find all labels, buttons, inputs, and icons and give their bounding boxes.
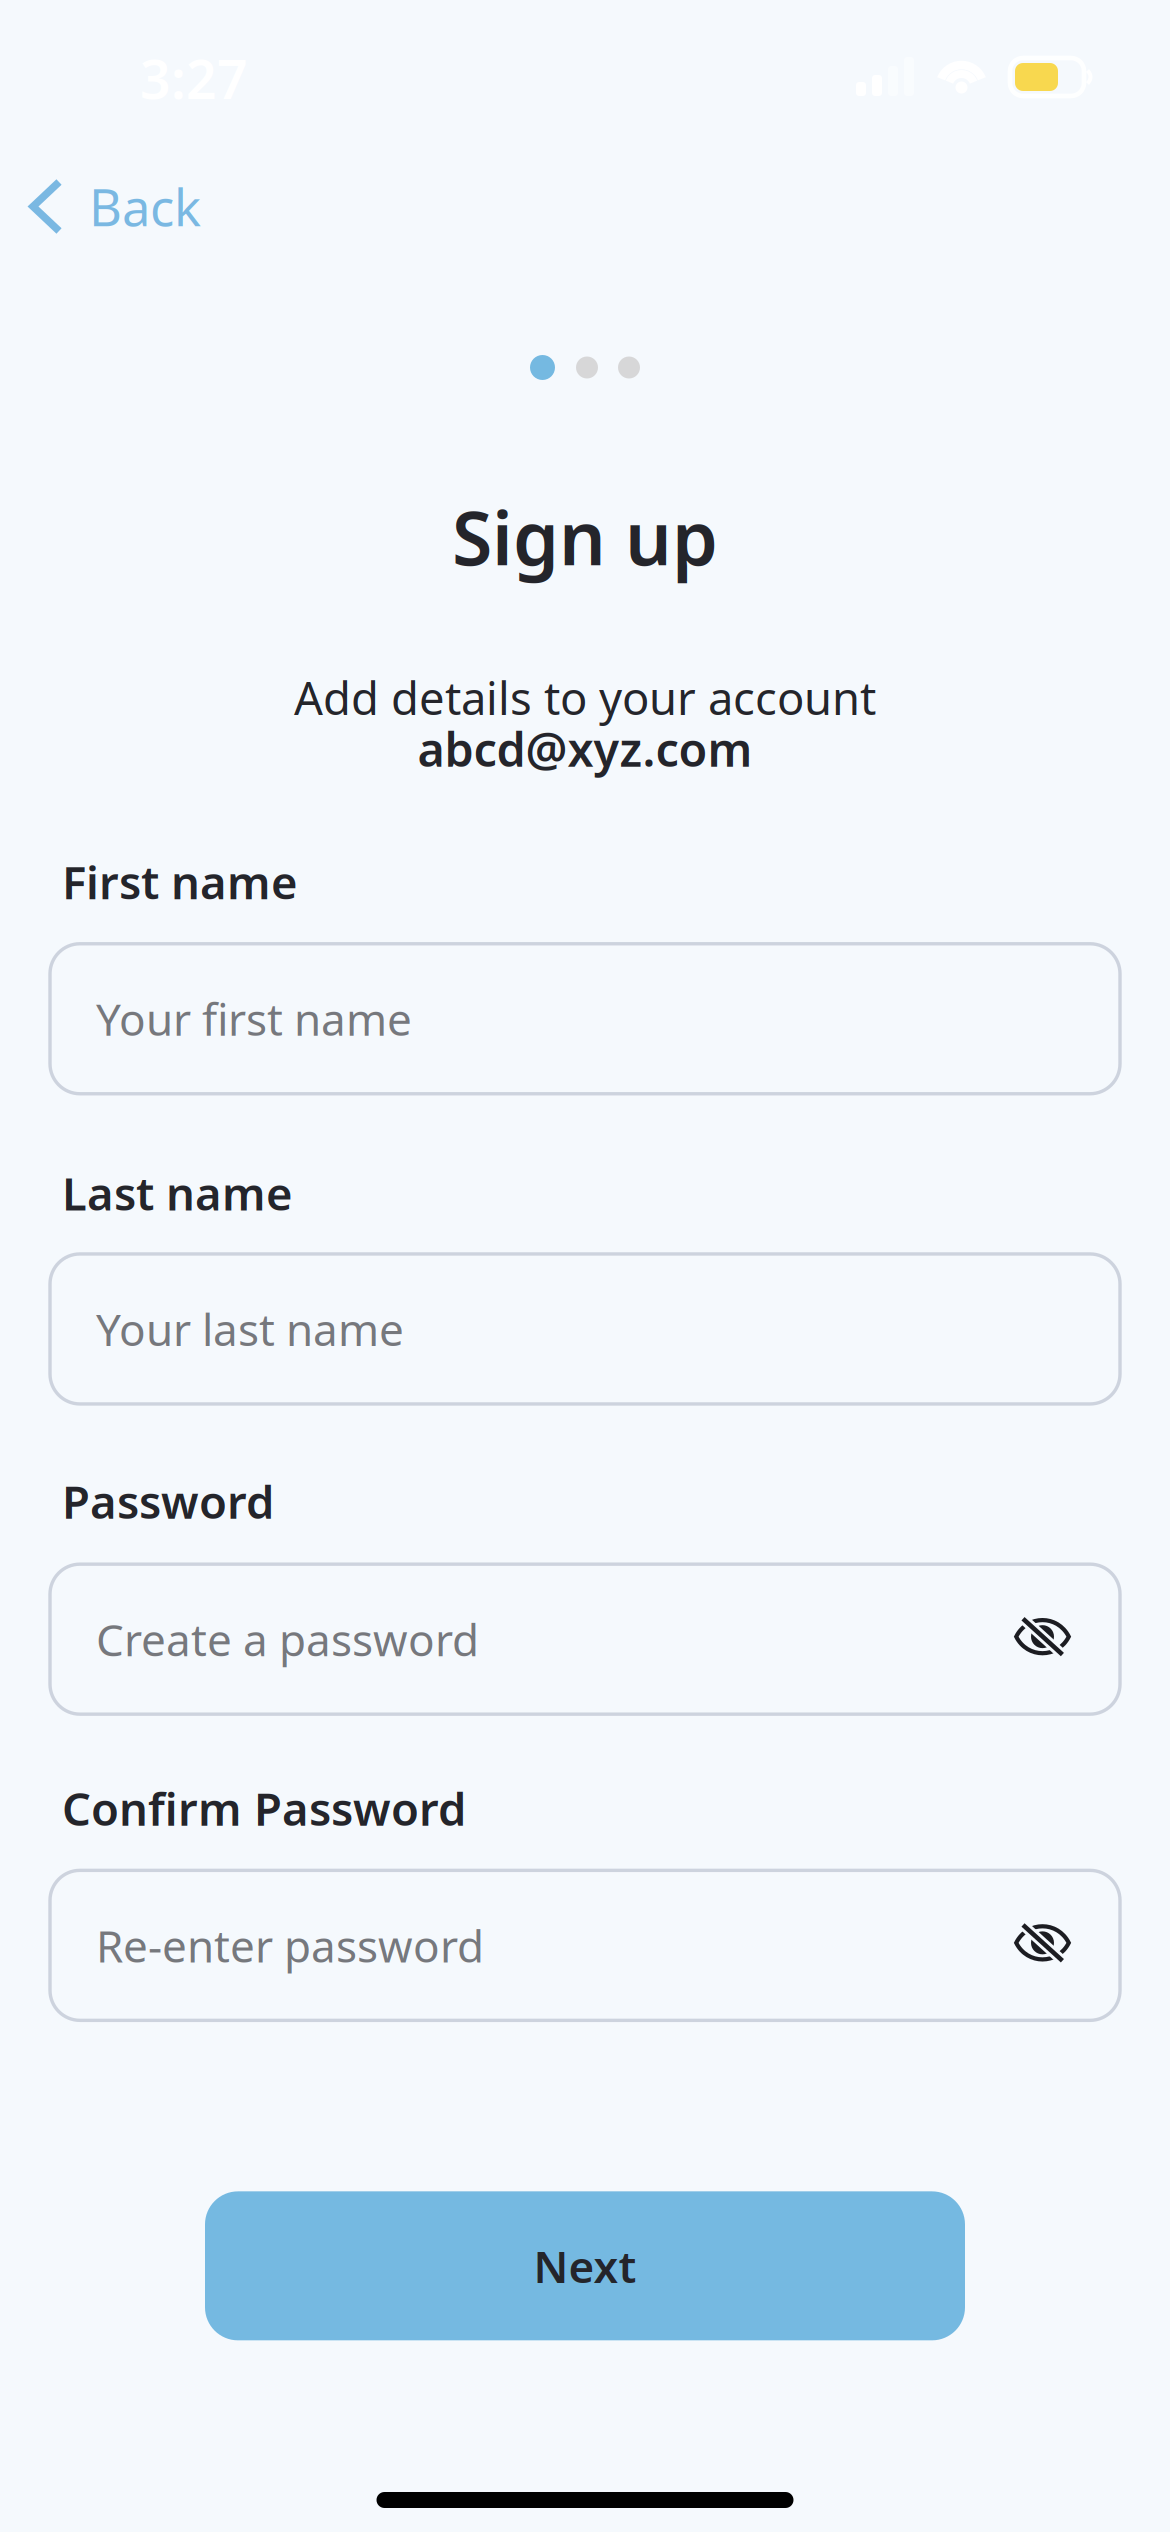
button[interactable]: Show password <box>1014 1923 1071 1967</box>
button[interactable]: Back <box>0 174 241 239</box>
button[interactable]: Page 3 <box>618 356 640 378</box>
staticText: Add details to your account <box>294 667 876 728</box>
button[interactable]: Your first name <box>50 944 1120 1094</box>
button[interactable]: Next <box>205 2191 965 2340</box>
staticText: Back <box>89 173 201 240</box>
staticText: 3:27 <box>140 43 248 114</box>
button[interactable]: Page 1, current page <box>530 355 555 380</box>
staticText: Last name <box>62 1163 293 1223</box>
staticText: abcd@xyz.com <box>417 718 752 780</box>
staticText: Create a password <box>96 1610 479 1668</box>
staticText: First name <box>62 852 298 912</box>
staticText: Confirm Password <box>62 1778 466 1838</box>
staticText: Your first name <box>96 989 412 1048</box>
button[interactable]: Your last name <box>50 1254 1120 1404</box>
staticText: Password <box>62 1471 274 1531</box>
staticText: Your last name <box>96 1300 404 1358</box>
staticText: Sign up <box>452 488 718 585</box>
button[interactable]: Page 2 <box>576 356 598 378</box>
staticText: Re-enter password <box>96 1916 484 1974</box>
staticText: Next <box>533 2237 636 2295</box>
button[interactable]: Create a password <box>50 1564 1120 1714</box>
button[interactable]: Re-enter password <box>50 1870 1120 2020</box>
button[interactable]: Show password <box>1014 1617 1071 1661</box>
